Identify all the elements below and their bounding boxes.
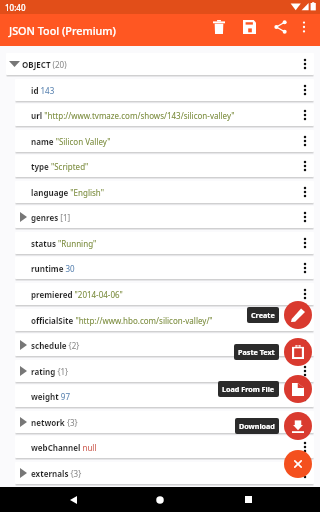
staticText: premiered "2014-04-06" <box>31 289 296 300</box>
button[interactable]: runtime 30 <box>15 257 314 279</box>
button[interactable]: name "Silicon Valley" <box>15 130 314 152</box>
staticText: id 143 <box>31 85 296 96</box>
button[interactable]: Back <box>58 487 88 512</box>
button[interactable]: Item menu <box>296 385 314 407</box>
staticText: OBJECT (20) <box>22 59 296 70</box>
button[interactable]: Home <box>145 487 175 512</box>
button[interactable]: Item menu <box>296 436 314 458</box>
button[interactable]: officialSite "http://www.hbo.com/silicon… <box>15 309 314 331</box>
button[interactable]: language "English" <box>15 181 314 203</box>
button[interactable]: Item menu <box>296 130 314 152</box>
button[interactable]: Item menu <box>296 411 314 433</box>
button[interactable]: schedule {2} <box>15 334 314 356</box>
staticText: 10:40 <box>5 2 26 13</box>
button[interactable]: url "http://www.tvmaze.com/shows/143/sil… <box>15 104 314 126</box>
button[interactable]: Load From File <box>284 375 312 403</box>
staticText: network {3} <box>31 417 296 428</box>
button[interactable]: Item menu <box>296 79 314 101</box>
button[interactable]: rating {1} <box>15 360 314 382</box>
button[interactable]: Create <box>247 307 279 323</box>
button[interactable]: webChannel null <box>15 436 314 458</box>
staticText: Download <box>239 421 275 431</box>
button[interactable]: Item menu <box>296 334 314 356</box>
staticText: webChannel null <box>31 442 296 453</box>
staticText: url "http://www.tvmaze.com/shows/143/sil… <box>31 110 296 121</box>
button[interactable]: type "Scripted" <box>15 155 314 177</box>
button[interactable]: Item menu <box>296 360 314 382</box>
staticText: schedule {2} <box>31 340 296 351</box>
staticText: status "Running" <box>31 238 296 249</box>
button[interactable]: weight 97 <box>15 385 314 407</box>
button[interactable]: Recents <box>233 487 263 512</box>
button[interactable]: Item menu <box>296 462 314 484</box>
button[interactable]: Download <box>235 418 279 434</box>
button[interactable]: Load From File <box>218 381 279 397</box>
button[interactable]: network {3} <box>15 411 314 433</box>
button[interactable]: Download <box>284 412 312 440</box>
button[interactable]: Item menu <box>296 104 314 126</box>
button[interactable]: Item menu <box>296 155 314 177</box>
button[interactable]: Item menu <box>296 283 314 305</box>
staticText: language "English" <box>31 187 296 198</box>
staticText: genres [1] <box>31 212 296 223</box>
button[interactable]: externals {3} <box>15 462 314 484</box>
staticText: rating {1} <box>31 366 296 377</box>
button[interactable]: Delete <box>206 14 232 40</box>
staticText: weight 97 <box>31 391 296 402</box>
button[interactable]: Item menu <box>296 53 314 75</box>
staticText: externals {3} <box>31 468 296 479</box>
staticText: Paste Text <box>238 347 275 357</box>
button[interactable]: Paste Text <box>234 344 279 360</box>
button[interactable]: Save <box>236 14 262 40</box>
button[interactable]: status "Running" <box>15 232 314 254</box>
button[interactable]: Create <box>284 301 312 329</box>
button[interactable]: Item menu <box>296 309 314 331</box>
staticText: name "Silicon Valley" <box>31 136 296 147</box>
button[interactable]: Close menu <box>284 450 312 478</box>
button[interactable]: More options <box>291 14 317 40</box>
staticText: Create <box>251 310 275 320</box>
button[interactable]: Share <box>267 14 293 40</box>
button[interactable]: premiered "2014-04-06" <box>15 283 314 305</box>
button[interactable]: genres [1] <box>15 206 314 228</box>
button[interactable]: Item menu <box>296 181 314 203</box>
staticText: runtime 30 <box>31 263 296 274</box>
button[interactable]: OBJECT (20) <box>6 53 314 75</box>
button[interactable]: id 143 <box>15 79 314 101</box>
staticText: officialSite "http://www.hbo.com/silicon… <box>31 315 296 326</box>
staticText: type "Scripted" <box>31 161 296 172</box>
button[interactable]: Paste Text <box>284 338 312 366</box>
button[interactable]: Item menu <box>296 206 314 228</box>
button[interactable]: Item menu <box>296 232 314 254</box>
staticText: Load From File <box>222 384 275 394</box>
button[interactable]: Item menu <box>296 257 314 279</box>
staticText: JSON Tool (Premium) <box>9 23 116 38</box>
